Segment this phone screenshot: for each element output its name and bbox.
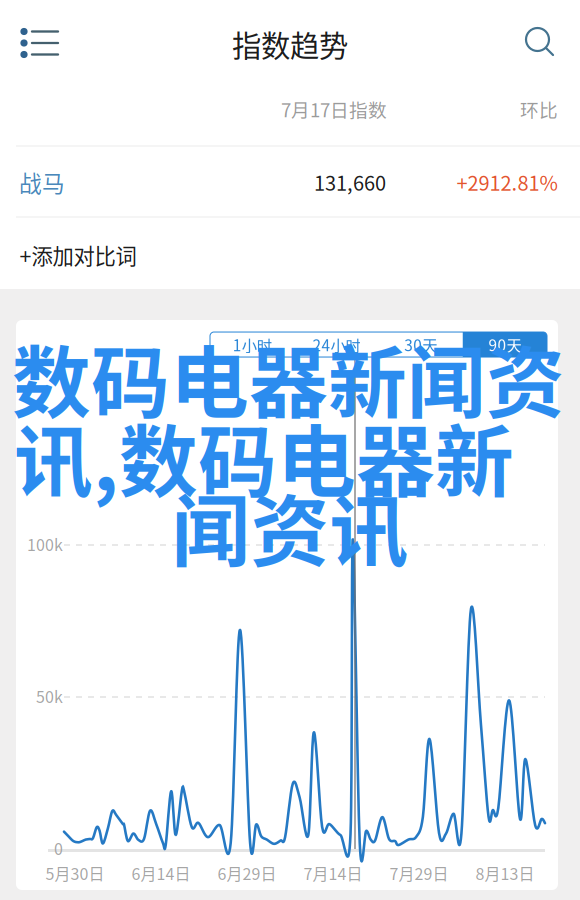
staticText: 指数趋势 — [232, 23, 348, 65]
staticText: 6月14日 — [131, 861, 190, 885]
staticText: 0 — [54, 836, 63, 860]
staticText: 100k — [27, 532, 63, 556]
staticText: +2912.81% — [456, 167, 557, 196]
button[interactable]: 1小时 — [210, 332, 294, 357]
staticText: 7月29日 — [389, 861, 448, 885]
staticText: 6月29日 — [217, 861, 276, 885]
button[interactable]: 24小时 — [294, 332, 378, 357]
staticText: 30天 — [404, 333, 437, 356]
staticText: 闻资讯 — [171, 469, 408, 583]
button[interactable]: Search — [513, 16, 567, 70]
staticText: +添加对比词 — [19, 240, 136, 270]
button[interactable]: +添加对比词 — [7, 222, 148, 288]
button[interactable]: 战马 131,660 +2912.81% — [16, 147, 580, 217]
staticText: 8月13日 — [475, 861, 534, 885]
staticText: 环比 — [520, 95, 558, 122]
button[interactable]: Menu — [10, 17, 72, 68]
staticText: 讯,数码电器新 — [14, 399, 514, 513]
staticText: 数码电器新闻资 — [12, 320, 565, 434]
staticText: 50k — [36, 684, 63, 708]
button[interactable]: 90天 — [463, 332, 547, 357]
staticText: 7月14日 — [303, 861, 362, 885]
button[interactable]: 30天 — [378, 332, 463, 357]
staticText: 131,660 — [314, 167, 386, 196]
staticText: 7月17日指数 — [281, 95, 387, 122]
staticText: 90天 — [488, 333, 521, 356]
staticText: 1小时 — [233, 333, 272, 356]
staticText: 24小时 — [312, 333, 360, 356]
staticText: 5月30日 — [45, 861, 104, 885]
staticText: 战马 — [19, 166, 65, 198]
